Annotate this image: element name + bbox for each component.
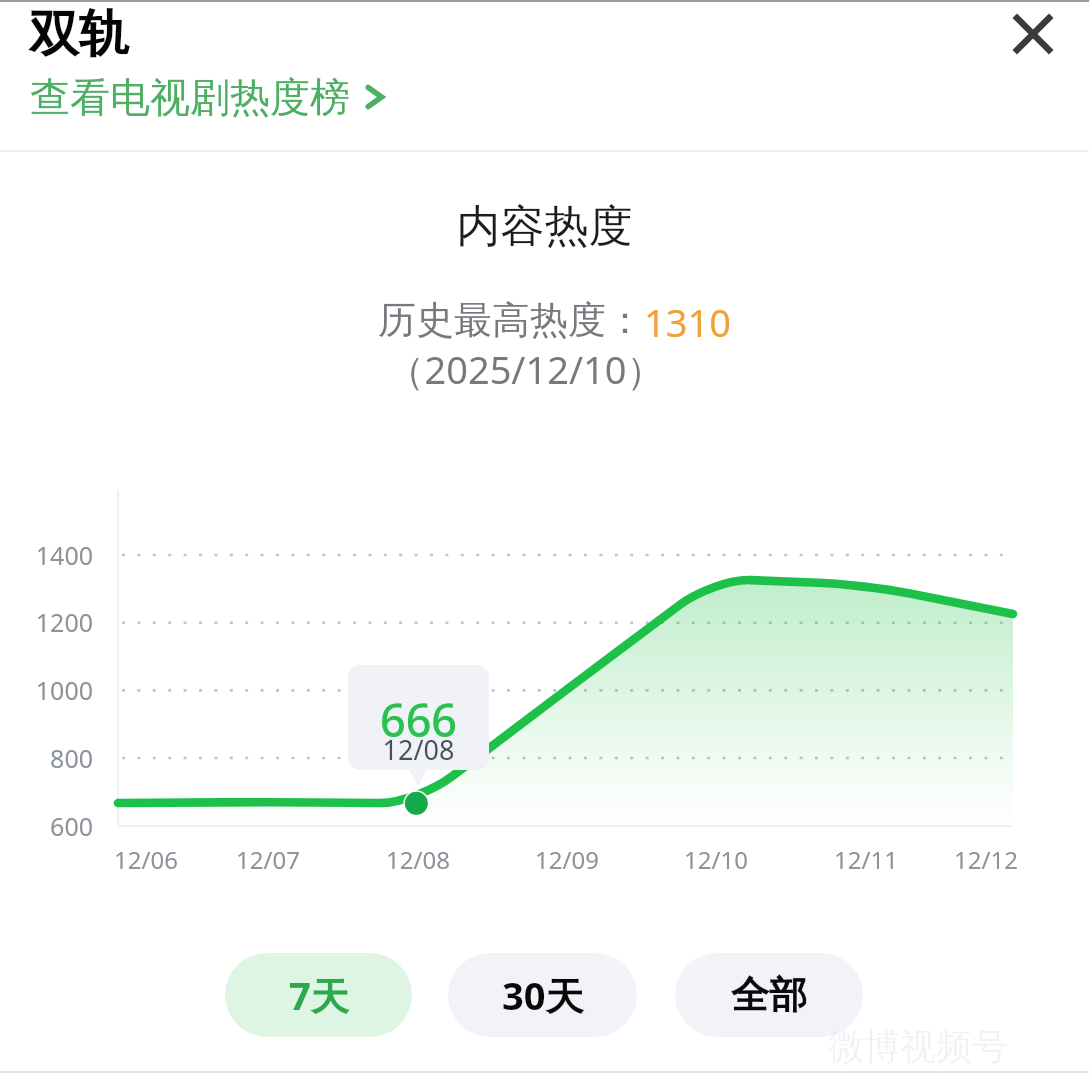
staticText: 666	[348, 689, 489, 750]
staticText: 全部	[731, 971, 807, 1019]
button[interactable]: Close	[993, 0, 1072, 68]
staticText: 12/09	[497, 843, 637, 876]
staticText: 7天	[289, 969, 349, 1021]
staticText: 1400	[0, 538, 93, 572]
staticText: 30天	[502, 969, 584, 1021]
staticText: 12/08	[348, 731, 489, 768]
staticText: 12/07	[198, 843, 338, 876]
button[interactable]: 查看电视剧热度榜	[30, 72, 390, 122]
staticText: 1310	[644, 296, 731, 348]
staticText: （2025/12/10）	[0, 343, 1070, 395]
staticText: 查看电视剧热度榜	[30, 72, 350, 122]
staticText: 800	[0, 741, 93, 775]
button[interactable]: 7天	[225, 953, 412, 1037]
staticText: 微博视频号	[828, 1024, 1008, 1069]
staticText: 1200	[0, 605, 93, 639]
staticText: 12/10	[646, 843, 786, 876]
staticText: 600	[0, 809, 93, 843]
staticText: 1000	[0, 673, 93, 707]
staticText: 内容热度	[0, 199, 1089, 254]
button[interactable]: 30天	[448, 953, 637, 1037]
staticText: 12/12	[916, 843, 1056, 876]
staticText: 12/11	[796, 843, 936, 876]
staticText: 历史最高热度：	[378, 296, 644, 344]
staticText: 12/06	[76, 843, 216, 876]
staticText: 双轨	[29, 3, 129, 66]
staticText: 12/08	[348, 843, 488, 876]
button[interactable]: 全部	[675, 953, 863, 1037]
